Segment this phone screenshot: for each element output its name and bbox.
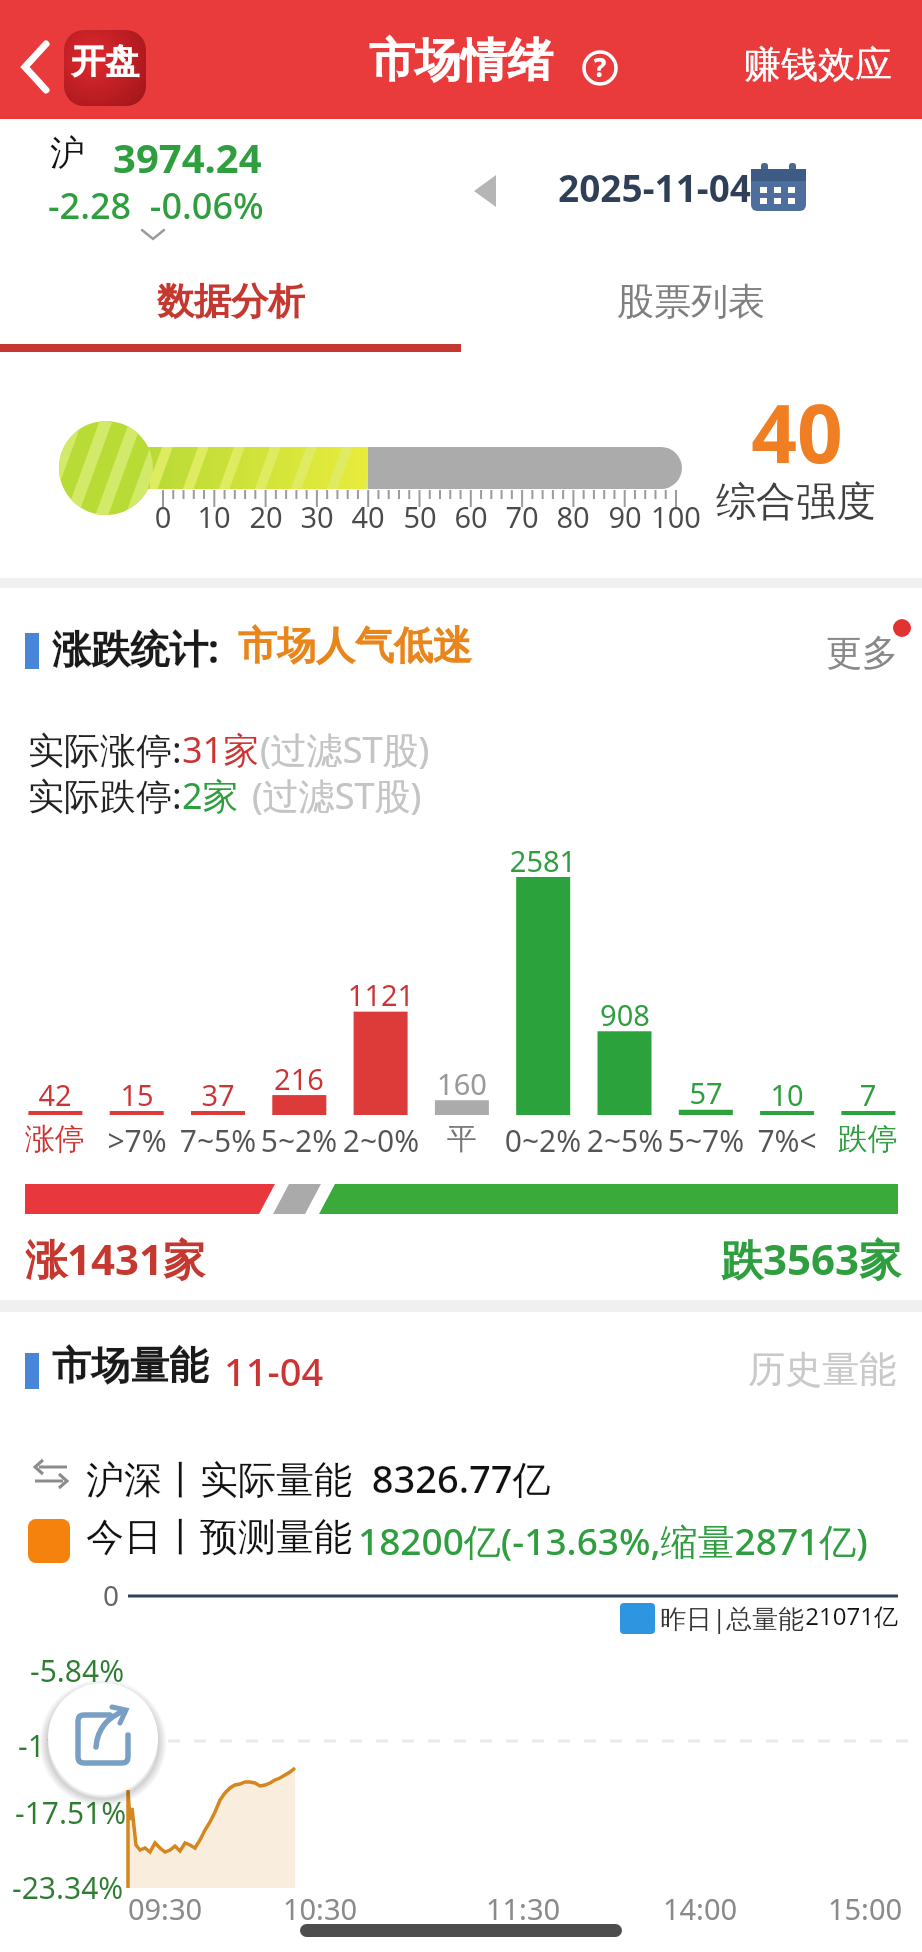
staticText: 市场量能 [52, 1341, 208, 1390]
staticText: 5~7% [646, 1120, 766, 1161]
staticText: 跌3563家 [721, 1230, 902, 1287]
staticText: 平 [402, 1120, 522, 1158]
staticText: 21071亿 [788, 1599, 898, 1632]
staticText: 50 [380, 497, 460, 536]
staticText: 2025-11-04 [558, 162, 751, 212]
staticText: 10 [727, 1075, 847, 1114]
staticText: 20 [226, 497, 306, 536]
staticText: 70 [482, 497, 562, 536]
staticText: 数据分析 [157, 278, 305, 325]
staticText: 实际跌停: [28, 771, 182, 820]
staticText: 股票列表 [617, 278, 765, 325]
staticText: 160 [402, 1064, 522, 1103]
staticText: 11-04 [224, 1345, 324, 1397]
staticText: 30 [277, 497, 357, 536]
staticText: 37 [158, 1075, 278, 1114]
staticText: 沪 [50, 131, 85, 175]
staticText: 90 [585, 497, 665, 536]
staticText: 0~2% [483, 1120, 603, 1161]
staticText: 昨日|总量能 [660, 1600, 805, 1636]
button[interactable] [740, 1340, 910, 1400]
button[interactable] [461, 270, 922, 352]
button[interactable] [460, 155, 820, 225]
staticText: 市场人气低迷 [238, 621, 472, 670]
staticText: 31家 [182, 725, 260, 774]
staticText: 60 [431, 497, 511, 536]
staticText: 80 [533, 497, 613, 536]
staticText: 2~0% [321, 1120, 441, 1161]
staticText: >7% [77, 1120, 197, 1161]
staticText: 09:30 [115, 1889, 215, 1928]
staticText: 涨停 [0, 1120, 115, 1158]
staticText: 1121 [321, 975, 441, 1014]
staticText: 涨1431家 [25, 1230, 206, 1287]
staticText: 沪深丨实际量能 8326.77亿 [86, 1452, 551, 1504]
staticText: 7~5% [158, 1120, 278, 1161]
staticText: 14:00 [650, 1889, 750, 1928]
button[interactable] [810, 625, 920, 681]
staticText: 跌停 [808, 1120, 922, 1158]
staticText: 10 [174, 497, 254, 536]
staticText: 40 [328, 497, 408, 536]
staticText: 40 [717, 377, 877, 486]
staticText: -23.34% [12, 1867, 124, 1908]
staticText: -11.67% [18, 1725, 130, 1766]
staticText: -5.84% [30, 1650, 125, 1691]
staticText: -2.28 -0.06% [48, 181, 264, 230]
staticText: 57 [646, 1073, 766, 1112]
staticText: 今日丨预测量能 [86, 1513, 352, 1561]
button[interactable] [16, 24, 156, 112]
staticText: 市场情绪 [369, 32, 553, 90]
staticText: 908 [565, 995, 685, 1034]
staticText: 18200亿(-13.63%,缩量2871亿) [358, 1515, 868, 1566]
staticText: 2家 [182, 771, 239, 820]
staticText: (过滤ST股) [252, 771, 422, 820]
staticText: (过滤ST股) [260, 725, 430, 774]
staticText: 实际涨停: [28, 725, 182, 774]
button[interactable] [0, 270, 461, 352]
staticText: 历史量能 [748, 1346, 896, 1393]
staticText: -17.51% [15, 1792, 127, 1833]
staticText: 7 [808, 1075, 922, 1114]
staticText: 0 [103, 1576, 120, 1614]
staticText: 0 [123, 497, 203, 536]
staticText: 11:30 [473, 1889, 573, 1928]
staticText: 15:00 [815, 1889, 915, 1928]
staticText: 42 [0, 1075, 115, 1114]
staticText: ? [591, 49, 609, 84]
staticText: 5~2% [239, 1120, 359, 1161]
staticText: 10:30 [270, 1889, 370, 1928]
button[interactable] [730, 40, 910, 96]
staticText: 7%< [727, 1120, 847, 1161]
staticText: 15 [77, 1075, 197, 1114]
staticText: 开盘 [71, 40, 139, 83]
staticText: 2~5% [565, 1120, 685, 1161]
staticText: 216 [239, 1059, 359, 1098]
staticText: 涨跌统计: [52, 621, 219, 674]
staticText: 2581 [483, 841, 603, 880]
staticText: 3974.24 [113, 130, 262, 184]
staticText: 100 [636, 497, 716, 536]
staticText: 综合强度 [716, 476, 876, 526]
button[interactable] [48, 1683, 158, 1793]
staticText: 更多 [826, 630, 898, 675]
staticText: 赚钱效应 [744, 41, 892, 88]
